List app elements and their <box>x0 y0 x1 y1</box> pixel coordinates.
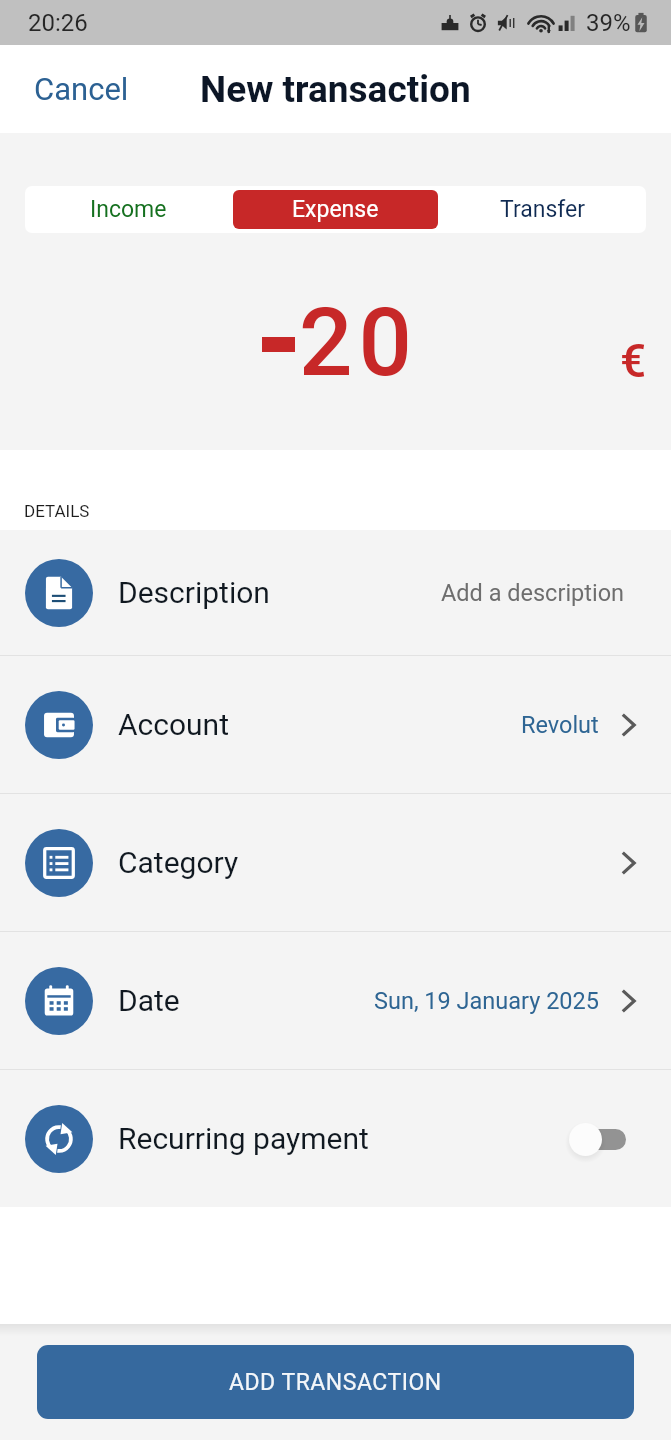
button[interactable]: Date <box>0 932 671 1069</box>
button[interactable]: ADD TRANSACTION <box>37 1345 634 1419</box>
button[interactable]: Recurring payment toggle <box>569 1116 626 1162</box>
button[interactable]: Recurring payment <box>0 1070 671 1207</box>
staticText: Recurring payment <box>118 1121 369 1156</box>
staticText: Transfer <box>500 196 586 223</box>
staticText: Income <box>90 196 167 223</box>
staticText: Date <box>118 983 180 1018</box>
staticText: Account <box>118 707 230 742</box>
staticText: 20:26 <box>28 9 88 37</box>
other: Open <box>621 714 636 736</box>
staticText: Sun, 19 January 2025 <box>374 987 599 1015</box>
staticText: 39% <box>586 9 631 37</box>
other: Open <box>621 990 636 1012</box>
button[interactable]: Income <box>25 186 232 233</box>
staticText: Description <box>118 575 270 610</box>
button[interactable]: Description <box>0 530 671 655</box>
staticText: 20 <box>299 288 418 398</box>
staticText: Cancel <box>34 71 129 107</box>
button[interactable]: Cancel <box>0 45 163 133</box>
staticText: Revolut <box>521 711 599 739</box>
staticText: Add a description <box>441 579 625 607</box>
button[interactable]: Category <box>0 794 671 931</box>
other: Open <box>621 852 636 874</box>
staticText: Category <box>118 845 239 880</box>
staticText: DETAILS <box>24 501 90 521</box>
staticText: € <box>620 334 647 388</box>
button[interactable]: Account <box>0 656 671 793</box>
staticText: ADD TRANSACTION <box>229 1369 442 1396</box>
staticText: New transaction <box>200 68 471 111</box>
button[interactable]: Transfer <box>439 186 646 233</box>
staticText: Expense <box>292 196 379 223</box>
button[interactable]: Expense <box>232 186 439 233</box>
